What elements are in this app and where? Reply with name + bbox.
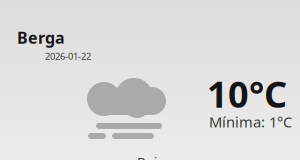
staticText: 10°C [207,70,287,118]
staticText: Berga [17,27,65,48]
staticText: Boira [137,153,169,160]
staticText: Mínima: 1°C [209,112,292,131]
button[interactable]: Berga weather, 10 degrees, fog [0,0,300,160]
staticText: 2026-01-22 [45,50,91,62]
